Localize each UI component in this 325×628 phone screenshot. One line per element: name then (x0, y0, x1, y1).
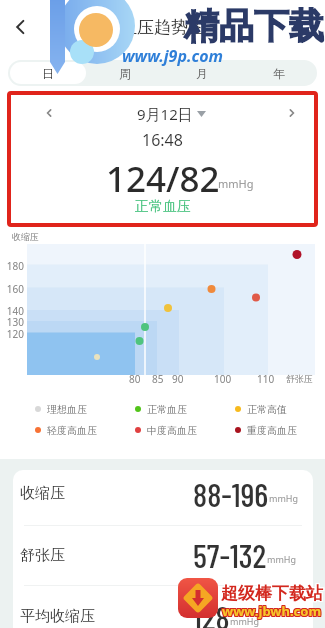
staticText: 130 (6, 315, 24, 329)
staticText: www.jbwh.com (222, 601, 322, 619)
staticText: 9月12日 (137, 104, 193, 124)
staticText: 超级棒下载站 (220, 582, 322, 603)
staticText: 85 (152, 372, 164, 386)
staticText: 超级棒下载站 (221, 582, 323, 603)
button[interactable]: 月 (163, 60, 240, 86)
button[interactable]: 平均收缩压 (13, 585, 313, 628)
staticText: www.jbwh.com (221, 603, 321, 621)
staticText: www.j9p.com (122, 45, 224, 67)
staticText: 88-196 (193, 474, 269, 514)
button[interactable] (42, 106, 56, 120)
staticText: 110 (257, 372, 275, 386)
staticText: 周 (119, 66, 131, 81)
staticText: 中度高血压 (147, 424, 197, 437)
staticText: 160 (6, 282, 24, 296)
staticText: 平均收缩压 (20, 607, 95, 626)
button[interactable]: 舒张压 (13, 525, 313, 585)
staticText: 轻度高血压 (47, 424, 97, 437)
staticText: 舒张压 (20, 546, 65, 565)
staticText: 超级棒下载站 (220, 584, 322, 605)
staticText: 超级棒下载站 (221, 583, 323, 604)
staticText: 精品下载 (184, 4, 324, 48)
staticText: 80 (129, 372, 141, 386)
button[interactable]: 9月12日 (137, 104, 206, 124)
staticText: 140 (6, 304, 24, 318)
button[interactable]: 收缩压 (13, 470, 313, 517)
staticText: 年 (273, 66, 285, 81)
staticText: 128 (193, 597, 230, 628)
staticText: mmHg (269, 492, 299, 504)
staticText: www.jbwh.com (221, 601, 321, 619)
button[interactable] (6, 13, 34, 41)
staticText: www.jbwh.com (222, 602, 322, 620)
staticText: 16:48 (142, 129, 183, 151)
staticText: 超级棒下载站 (222, 584, 324, 605)
staticText: 正常血压 (147, 403, 187, 416)
staticText: 超级棒下载站 (222, 583, 324, 604)
staticText: 正常血压 (135, 198, 191, 216)
staticText: 超级棒下载站 (220, 583, 322, 604)
staticText: 重度高血压 (247, 424, 297, 437)
staticText: www.jbwh.com (223, 602, 323, 620)
button[interactable]: 周 (86, 60, 163, 86)
staticText: 超级棒下载站 (222, 582, 324, 603)
staticText: mmHg (218, 176, 254, 191)
staticText: www.jbwh.com (223, 601, 323, 619)
staticText: 180 (6, 259, 24, 273)
staticText: 收缩压 (20, 484, 65, 503)
button[interactable] (285, 106, 299, 120)
staticText: 超级棒下载站 (221, 584, 323, 605)
staticText: 理想血压 (47, 403, 87, 416)
staticText: 124/82 (106, 155, 220, 203)
staticText: 正常高值 (247, 403, 287, 416)
staticText: mmHg (267, 553, 297, 565)
staticText: 日 (42, 66, 54, 81)
staticText: 90 (172, 372, 184, 386)
staticText: 100 (214, 372, 232, 386)
staticText: 血压趋势图 (120, 17, 205, 38)
staticText: 收缩压 (12, 231, 39, 242)
button[interactable]: 年 (240, 60, 317, 86)
staticText: www.jbwh.com (223, 603, 323, 621)
staticText: 57-132 (193, 535, 267, 575)
button[interactable]: 日 (10, 62, 86, 84)
staticText: 120 (6, 327, 24, 341)
staticText: www.jbwh.com (222, 603, 322, 621)
staticText: mmHg (230, 615, 260, 627)
staticText: 月 (196, 66, 208, 81)
staticText: www.jbwh.com (221, 602, 321, 620)
staticText: 舒张压 (286, 373, 313, 384)
